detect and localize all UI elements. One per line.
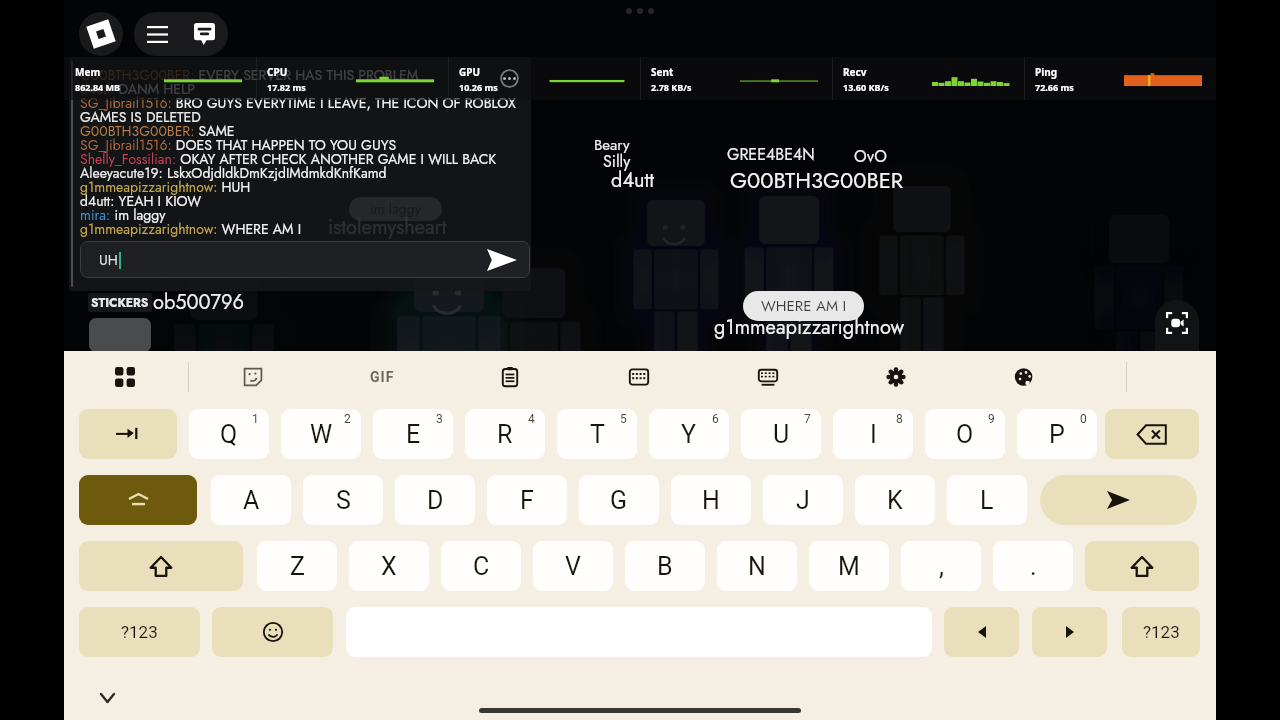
- button[interactable]: P: [1017, 409, 1097, 459]
- button[interactable]: Apps: [105, 357, 145, 397]
- button[interactable]: Cursor right: [1032, 607, 1107, 657]
- button[interactable]: Theme: [1004, 357, 1044, 397]
- staticText: 2: [344, 412, 351, 426]
- staticText: S: [336, 486, 351, 515]
- staticText: d4utt: YEAH I KIOW: [80, 191, 202, 211]
- button[interactable]: Number pad: [619, 357, 659, 397]
- staticText: d4utt: DANM HELP: [80, 79, 196, 99]
- button[interactable]: Chat: [181, 12, 228, 56]
- button[interactable]: Menu: [134, 12, 181, 56]
- staticText: UH: [99, 250, 118, 270]
- staticText: 9: [988, 412, 995, 426]
- button[interactable]: Y: [649, 409, 729, 459]
- button[interactable]: X: [349, 541, 429, 591]
- button[interactable]: D: [395, 475, 475, 525]
- staticText: 8: [896, 412, 903, 426]
- staticText: 3: [436, 412, 443, 426]
- staticText: Ping: [1035, 65, 1058, 79]
- button[interactable]: ?123: [1122, 607, 1200, 657]
- staticText: B: [657, 552, 673, 581]
- button[interactable]: Emoji: [212, 607, 333, 657]
- staticText: K: [887, 486, 903, 515]
- button[interactable]: Clipboard: [490, 357, 530, 397]
- button[interactable]: Tab: [79, 409, 177, 459]
- button[interactable]: ,: [901, 541, 981, 591]
- staticText: Mem: [75, 65, 101, 79]
- button[interactable]: W: [281, 409, 361, 459]
- button[interactable]: Settings: [876, 357, 916, 397]
- button[interactable]: Z: [257, 541, 337, 591]
- button[interactable]: C: [441, 541, 521, 591]
- staticText: H: [702, 486, 720, 515]
- staticText: GAMES IS DELETED: [80, 107, 201, 127]
- staticText: N: [748, 552, 766, 581]
- button[interactable]: Keyboard modes: [748, 357, 788, 397]
- button[interactable]: R: [465, 409, 545, 459]
- staticText: X: [381, 552, 397, 581]
- button[interactable]: Send: [1040, 475, 1197, 525]
- staticText: G00BTH3G00BER: SAME: [80, 121, 235, 141]
- button[interactable]: T: [557, 409, 637, 459]
- staticText: WHERE AM I: [761, 295, 847, 317]
- staticText: W: [310, 420, 333, 449]
- button[interactable]: More stats: [500, 69, 519, 88]
- button[interactable]: STICKERS: [91, 294, 149, 311]
- staticText: mira: im laggy: [80, 205, 166, 225]
- button[interactable]: L: [947, 475, 1027, 525]
- staticText: STICKERS: [91, 294, 149, 311]
- button[interactable]: N: [717, 541, 797, 591]
- staticText: 5: [620, 412, 627, 426]
- button[interactable]: V: [533, 541, 613, 591]
- button[interactable]: Shift right: [1085, 541, 1199, 591]
- button[interactable]: S: [303, 475, 383, 525]
- staticText: 7: [804, 412, 811, 426]
- button[interactable]: ?123: [79, 607, 200, 657]
- button[interactable]: Stickers: [233, 357, 273, 397]
- button[interactable]: Hide keyboard: [90, 681, 124, 715]
- button[interactable]: B: [625, 541, 705, 591]
- button[interactable]: J: [763, 475, 843, 525]
- button[interactable]: E: [373, 409, 453, 459]
- staticText: Silly: [603, 150, 631, 173]
- staticText: im laggy: [370, 199, 421, 219]
- button[interactable]: O: [925, 409, 1005, 459]
- staticText: O: [956, 420, 974, 449]
- staticText: g1mmeapizzarightnow: HUH: [80, 177, 251, 197]
- button[interactable]: Shift: [79, 541, 243, 591]
- staticText: GREE4BE4N: [727, 143, 815, 166]
- button[interactable]: H: [671, 475, 751, 525]
- button[interactable]: F: [487, 475, 567, 525]
- staticText: 4: [528, 412, 535, 426]
- staticText: Sent: [651, 65, 674, 79]
- staticText: ,: [939, 552, 944, 581]
- staticText: 72.66 ms: [1035, 81, 1074, 93]
- button[interactable]: G: [579, 475, 659, 525]
- button[interactable]: M: [809, 541, 889, 591]
- button[interactable]: .: [993, 541, 1073, 591]
- button[interactable]: GIF: [360, 357, 404, 397]
- button[interactable]: Q: [189, 409, 269, 459]
- button[interactable]: Roblox home: [79, 12, 123, 56]
- staticText: ob500796: [153, 288, 245, 317]
- staticText: 2.78 KB/s: [651, 81, 692, 93]
- button[interactable]: K: [855, 475, 935, 525]
- staticText: C: [473, 552, 490, 581]
- button[interactable]: U: [741, 409, 821, 459]
- button[interactable]: Caps lock: [79, 475, 197, 525]
- button[interactable]: Backspace: [1105, 409, 1199, 459]
- staticText: F: [520, 486, 534, 515]
- button[interactable]: UH: [80, 241, 530, 278]
- button[interactable]: I: [833, 409, 913, 459]
- button[interactable]: A: [211, 475, 291, 525]
- button[interactable]: Camera: [1155, 300, 1199, 352]
- button[interactable]: Cursor left: [944, 607, 1019, 657]
- staticText: CPU: [267, 65, 288, 79]
- staticText: J: [796, 486, 810, 515]
- staticText: 862.84 MB: [75, 81, 121, 93]
- staticText: M: [838, 552, 860, 581]
- staticText: Aleeyacute19: LskxOdjdIdkDmKzjdIMdmkdKnf…: [80, 163, 387, 183]
- staticText: GIF: [370, 369, 395, 385]
- staticText: 10.26 ms: [459, 81, 498, 93]
- staticText: 1: [252, 412, 259, 426]
